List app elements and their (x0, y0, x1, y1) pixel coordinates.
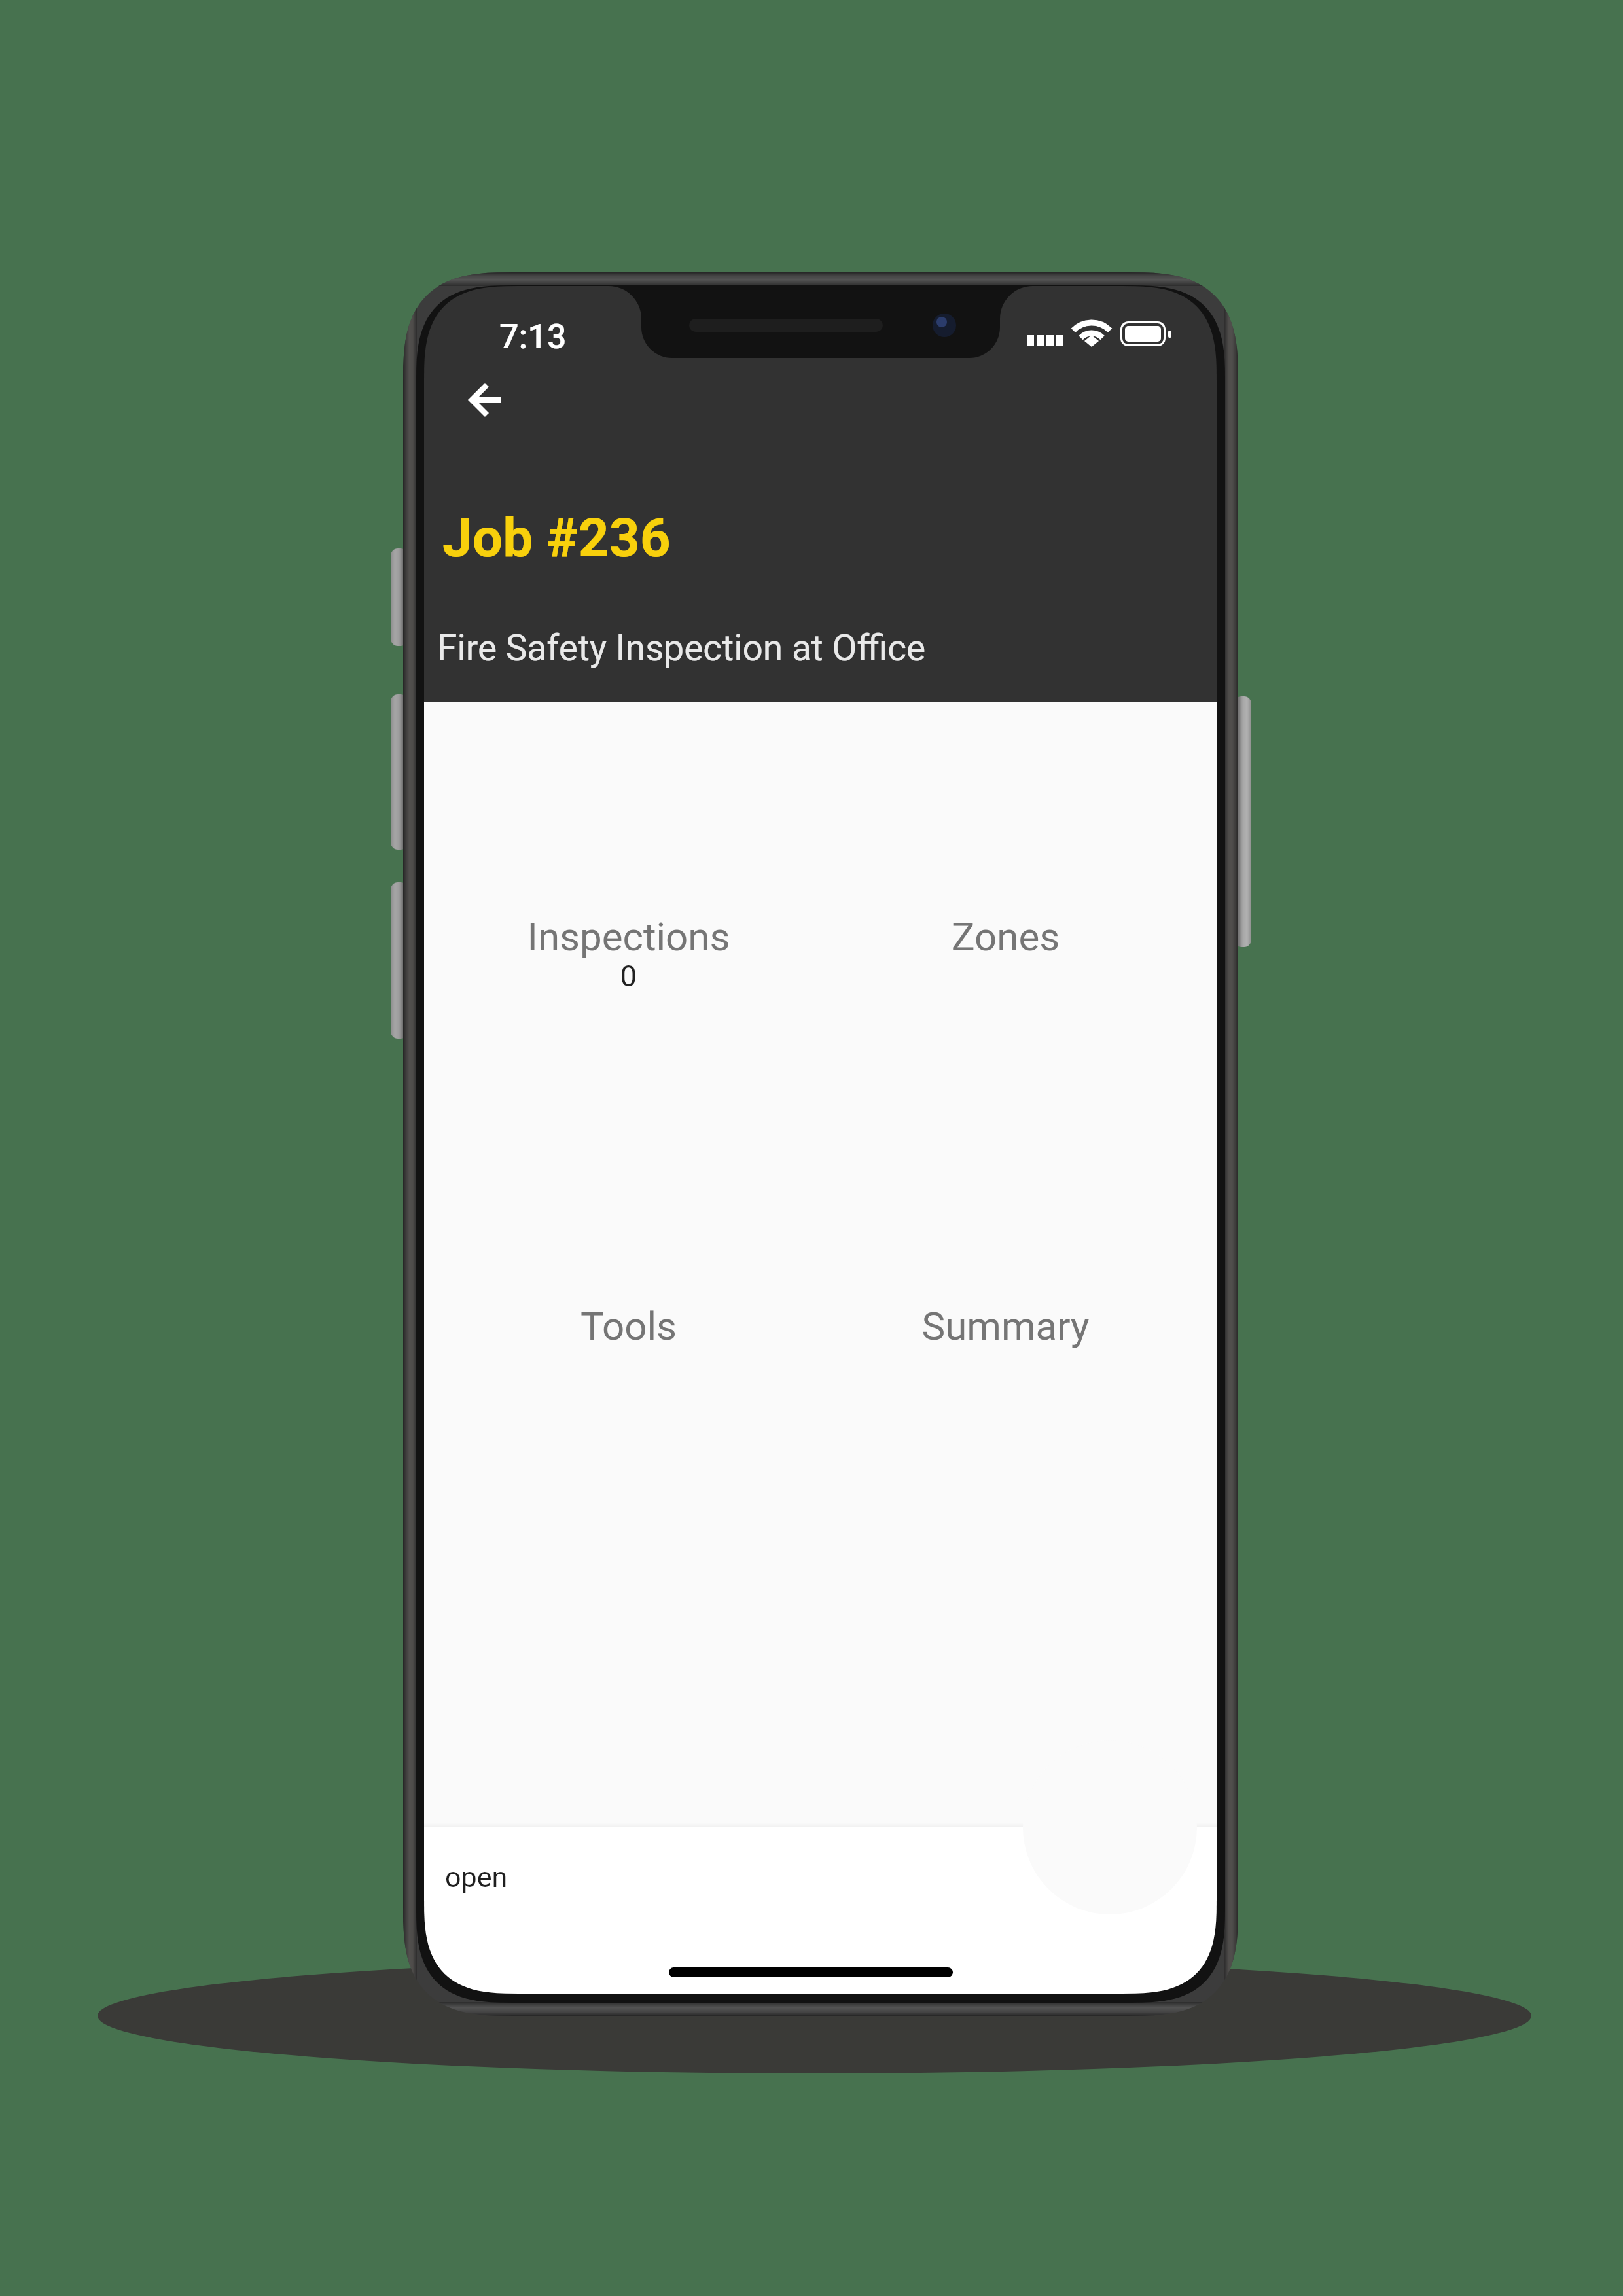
button[interactable] (450, 736, 807, 1094)
staticText: Inspections (450, 914, 807, 960)
staticText: 7:13 (499, 317, 567, 357)
button[interactable] (450, 1113, 807, 1471)
staticText: open (445, 1861, 508, 1893)
staticText: Summary (827, 1303, 1185, 1349)
staticText: Zones (827, 914, 1185, 960)
button[interactable]: Back (450, 363, 524, 436)
button[interactable] (827, 736, 1185, 1094)
staticText: Tools (450, 1303, 807, 1349)
staticText: Job #236 (442, 507, 671, 569)
staticText: 0 (450, 959, 807, 994)
button[interactable] (827, 1113, 1185, 1471)
staticText: Fire Safety Inspection at Office (437, 627, 926, 669)
